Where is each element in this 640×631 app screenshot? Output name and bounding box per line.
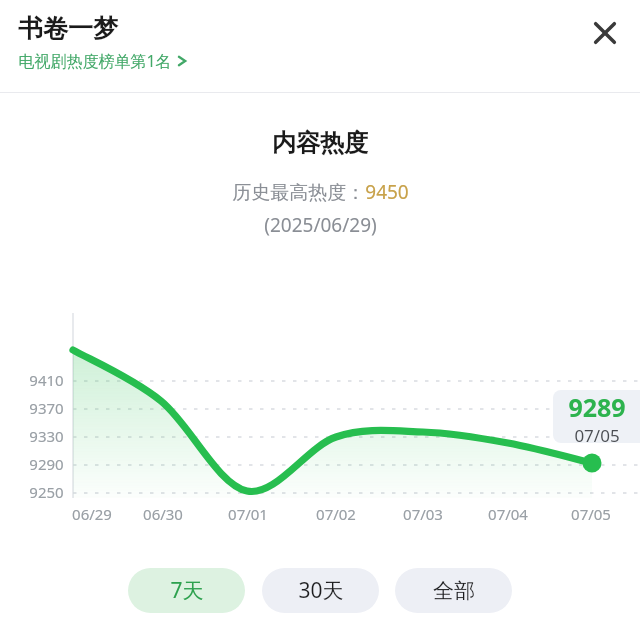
button[interactable]: Close — [587, 15, 623, 51]
staticText: 07/04 — [488, 504, 528, 524]
button[interactable]: 30天 — [262, 568, 379, 613]
staticText: 书卷一梦 — [18, 13, 118, 44]
staticText: 9290 — [29, 454, 64, 474]
staticText: 电视剧热度榜单第1名 — [18, 50, 172, 72]
staticText: (2025/06/29) — [264, 212, 377, 238]
staticText: 内容热度 — [272, 128, 368, 158]
staticText: 07/01 — [228, 504, 268, 524]
staticText: 9330 — [29, 426, 64, 446]
staticText: 9410 — [29, 370, 64, 390]
staticText: 9250 — [29, 482, 64, 502]
staticText: 06/29 — [72, 504, 112, 524]
staticText: 9370 — [29, 398, 64, 418]
button[interactable]: 7天 — [128, 568, 245, 613]
button[interactable]: 全部 — [395, 568, 512, 613]
staticText: 07/03 — [403, 504, 443, 524]
staticText: 07/02 — [316, 504, 356, 524]
staticText: 全部 — [433, 578, 475, 604]
staticText: 30天 — [298, 576, 344, 605]
staticText: 06/30 — [143, 504, 183, 524]
staticText: 07/05 — [571, 504, 611, 524]
button[interactable]: 电视剧热度榜单第1名 — [18, 50, 187, 72]
staticText: 历史最高热度：9450 — [232, 179, 409, 205]
staticText: 9289 — [568, 390, 626, 424]
staticText: 7天 — [170, 576, 204, 605]
staticText: 07/05 — [574, 424, 620, 443]
